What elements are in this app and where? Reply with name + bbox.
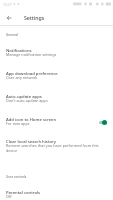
button[interactable]: Back [0, 9, 18, 26]
staticText: General [6, 33, 18, 37]
button[interactable]: Add icon to Home screen [0, 117, 113, 133]
button[interactable]: Parental controls [0, 190, 113, 200]
staticText: Don't auto-update apps [6, 98, 48, 103]
button[interactable]: App download preference [0, 71, 113, 87]
staticText: Remove searches that you have performed … [6, 143, 107, 153]
staticText: Notifications [6, 48, 32, 54]
staticText: Clear local search history [6, 139, 57, 145]
staticText: Parental controls [6, 190, 41, 196]
staticText: 10:27 [3, 2, 12, 7]
staticText: Over any network [6, 75, 38, 80]
staticText: Settings [24, 14, 45, 21]
staticText: Off [6, 194, 12, 199]
staticText: User controls [6, 175, 27, 179]
button[interactable]: Clear local search history [0, 139, 113, 161]
staticText: Auto-update apps [6, 94, 42, 100]
staticText: App download preference [6, 71, 58, 77]
staticText: Manage notification settings [6, 52, 57, 57]
staticText: Add icon to Home screen [6, 117, 57, 123]
button[interactable]: Notifications [0, 48, 113, 64]
staticText: For new apps [6, 121, 30, 126]
button[interactable]: Auto-update apps [0, 94, 113, 110]
